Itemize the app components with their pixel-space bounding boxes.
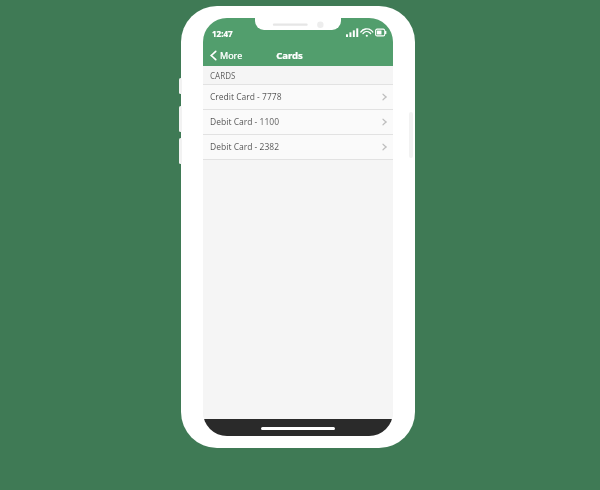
button[interactable]: Credit Card - 7778 (203, 85, 393, 109)
staticText: Cards (276, 49, 303, 62)
button[interactable]: Debit Card - 1100 (203, 110, 393, 134)
button[interactable]: Debit Card - 2382 (203, 135, 393, 159)
staticText: Debit Card - 2382 (210, 141, 280, 153)
staticText: CARDS (210, 70, 236, 81)
staticText: More (220, 49, 243, 61)
staticText: Credit Card - 7778 (210, 91, 282, 103)
button[interactable]: More (203, 44, 249, 66)
staticText: 12:47 (212, 28, 233, 39)
staticText: Debit Card - 1100 (210, 116, 280, 128)
